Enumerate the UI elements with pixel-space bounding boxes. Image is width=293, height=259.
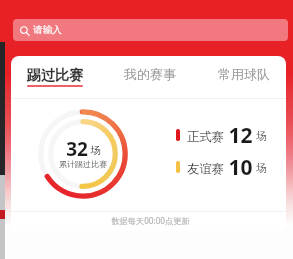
- staticText: 场: [256, 129, 267, 143]
- staticText: 场: [90, 144, 101, 157]
- button[interactable]: Side panel: [0, 42, 5, 259]
- staticText: 12: [228, 121, 253, 143]
- staticText: 友谊赛: [187, 161, 224, 176]
- staticText: 我的赛事: [124, 66, 176, 82]
- staticText: 10: [228, 153, 253, 175]
- staticText: 常用球队: [218, 66, 270, 82]
- button[interactable]: 常用球队: [199, 59, 286, 95]
- staticText: 正式赛: [187, 129, 224, 144]
- staticText: 数据每天00:00点更新: [111, 215, 190, 226]
- staticText: 累计踢过比赛: [59, 159, 107, 169]
- button[interactable]: 正式赛: [173, 120, 267, 142]
- button[interactable]: 我的赛事: [105, 59, 195, 95]
- staticText: 请输入: [33, 24, 62, 36]
- staticText: 32: [66, 136, 88, 158]
- staticText: 场: [256, 161, 267, 175]
- staticText: 踢过比赛: [26, 66, 84, 84]
- button[interactable]: 踢过比赛: [11, 59, 100, 95]
- button[interactable]: 友谊赛: [173, 152, 267, 174]
- button[interactable]: 请输入: [13, 19, 288, 41]
